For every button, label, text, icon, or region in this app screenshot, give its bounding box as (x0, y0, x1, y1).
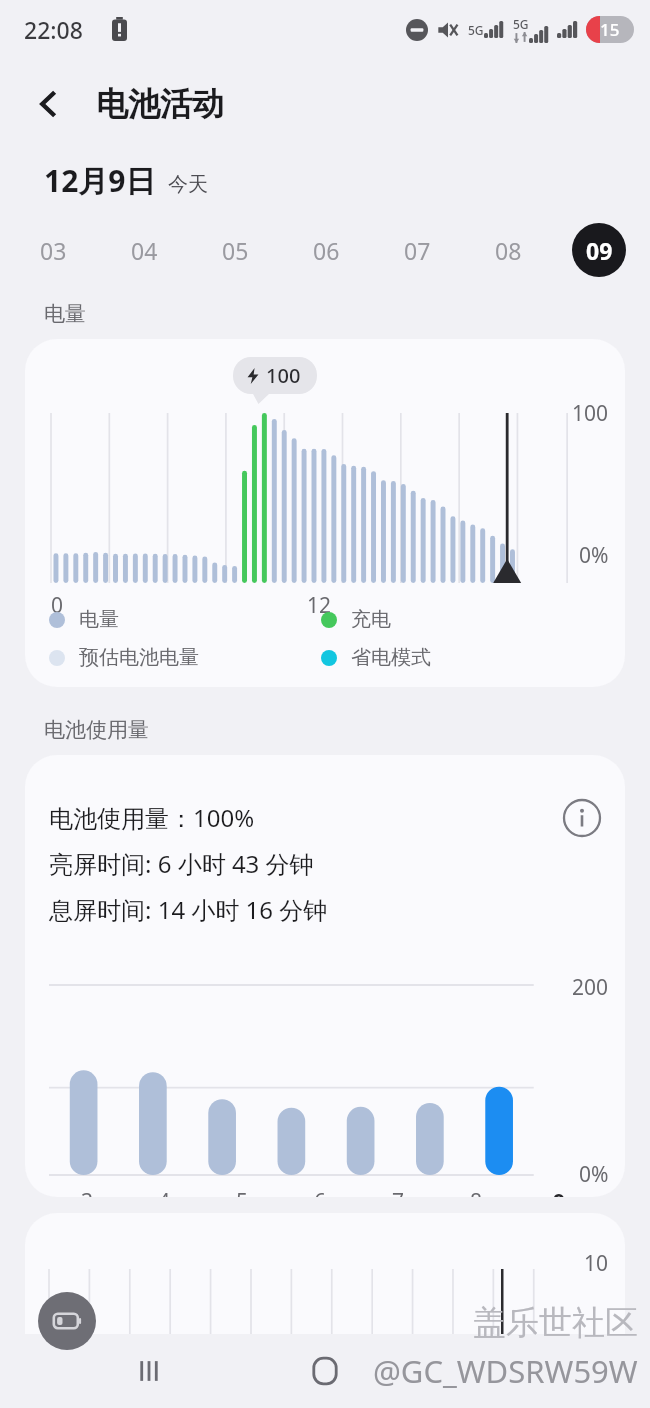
staticText: 息屏时间: 14 小时 16 分钟 (49, 893, 328, 926)
button[interactable]: 08 (481, 223, 535, 277)
staticText: 6 (314, 1187, 327, 1197)
staticText: 08 (495, 235, 522, 266)
staticText: 充电 (351, 607, 391, 632)
staticText: 7 (392, 1187, 405, 1197)
button[interactable]: Battery widget (38, 1292, 96, 1350)
staticText: 07 (404, 235, 431, 266)
button[interactable]: 06 (299, 223, 353, 277)
button[interactable]: 09 (572, 223, 626, 277)
button[interactable]: 07 (390, 223, 444, 277)
staticText: 04 (131, 235, 158, 266)
staticText: 100 (266, 362, 301, 389)
staticText: 22:08 (24, 14, 83, 45)
staticText: 9 (553, 1187, 566, 1197)
staticText: 8 (470, 1187, 483, 1197)
staticText: 电量 (79, 607, 119, 632)
staticText: 05 (222, 235, 249, 266)
staticText: 5G (513, 16, 529, 32)
staticText: 电池活动 (96, 84, 224, 124)
staticText: 盖乐世社区 (473, 1302, 638, 1344)
button[interactable]: 预估电池电量 (49, 645, 321, 670)
staticText: 预估电池电量 (79, 645, 199, 670)
button[interactable]: Home (296, 1342, 354, 1400)
staticText: 0 (51, 591, 64, 620)
staticText: 100 (572, 399, 609, 428)
staticText: @GC_WDSRW59W (373, 1350, 638, 1392)
staticText: 3 (81, 1187, 94, 1197)
staticText: 电池使用量 (44, 717, 149, 743)
button[interactable]: 04 (117, 223, 171, 277)
button[interactable]: 100 (25, 339, 625, 687)
staticText: 省电模式 (351, 645, 431, 670)
button[interactable]: 充电 (321, 607, 461, 632)
button[interactable]: 省电模式 (321, 645, 461, 670)
button[interactable]: 电量 (49, 607, 321, 632)
staticText: 12月9日 (44, 160, 156, 201)
staticText: 09 (586, 235, 613, 266)
staticText: 0% (579, 541, 609, 570)
staticText: 03 (40, 235, 67, 266)
staticText: 0% (579, 1160, 609, 1189)
staticText: 12 (307, 591, 332, 620)
button[interactable]: Recents (120, 1342, 178, 1400)
staticText: 电池使用量：100% (49, 801, 255, 834)
staticText: 06 (313, 235, 340, 266)
staticText: 今天 (168, 172, 208, 197)
button[interactable]: 05 (208, 223, 262, 277)
staticText: 15 (600, 18, 620, 41)
staticText: 5G (468, 22, 484, 38)
staticText: 5 (236, 1187, 249, 1197)
staticText: 4 (158, 1187, 171, 1197)
staticText: 电量 (44, 301, 86, 327)
button[interactable]: Back (20, 75, 78, 133)
button[interactable]: 电池使用量：100% (25, 755, 625, 1197)
button[interactable]: Info (559, 795, 605, 841)
staticText: 10 (584, 1249, 609, 1278)
button[interactable]: 03 (26, 223, 80, 277)
staticText: 200 (572, 973, 609, 1002)
staticText: 亮屏时间: 6 小时 43 分钟 (49, 847, 314, 880)
